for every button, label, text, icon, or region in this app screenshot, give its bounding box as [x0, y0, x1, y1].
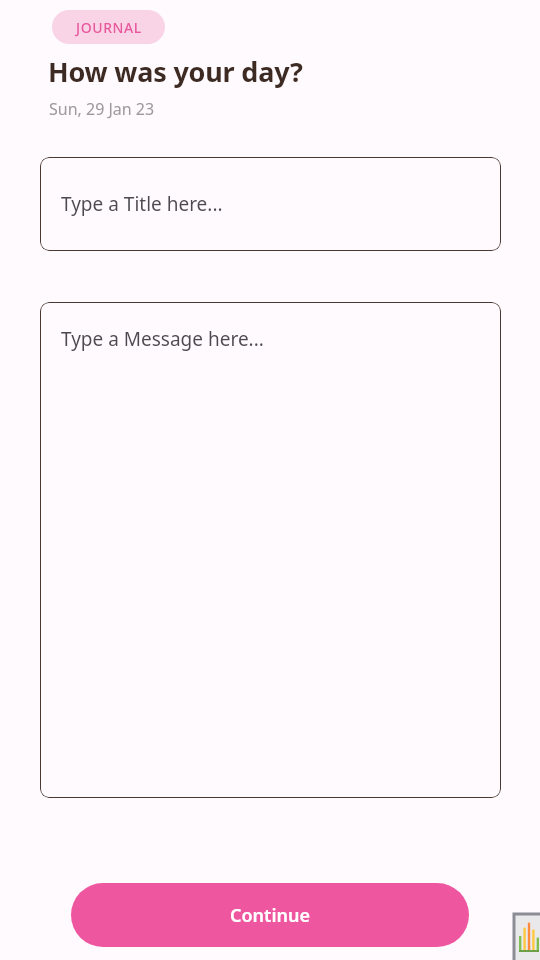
staticText: Type a Message here...: [61, 326, 264, 352]
button[interactable]: Type a Message here...: [40, 302, 501, 798]
staticText: Continue: [230, 903, 310, 928]
staticText: Sun, 29 Jan 23: [49, 98, 155, 120]
button[interactable]: JOURNAL: [52, 10, 165, 44]
button[interactable]: Continue: [71, 883, 469, 947]
button[interactable]: Type a Title here...: [40, 157, 501, 251]
staticText: JOURNAL: [76, 18, 142, 37]
staticText: How was your day?: [48, 53, 303, 90]
staticText: Type a Title here...: [61, 191, 223, 217]
button[interactable]: Chart widget: [514, 914, 540, 960]
